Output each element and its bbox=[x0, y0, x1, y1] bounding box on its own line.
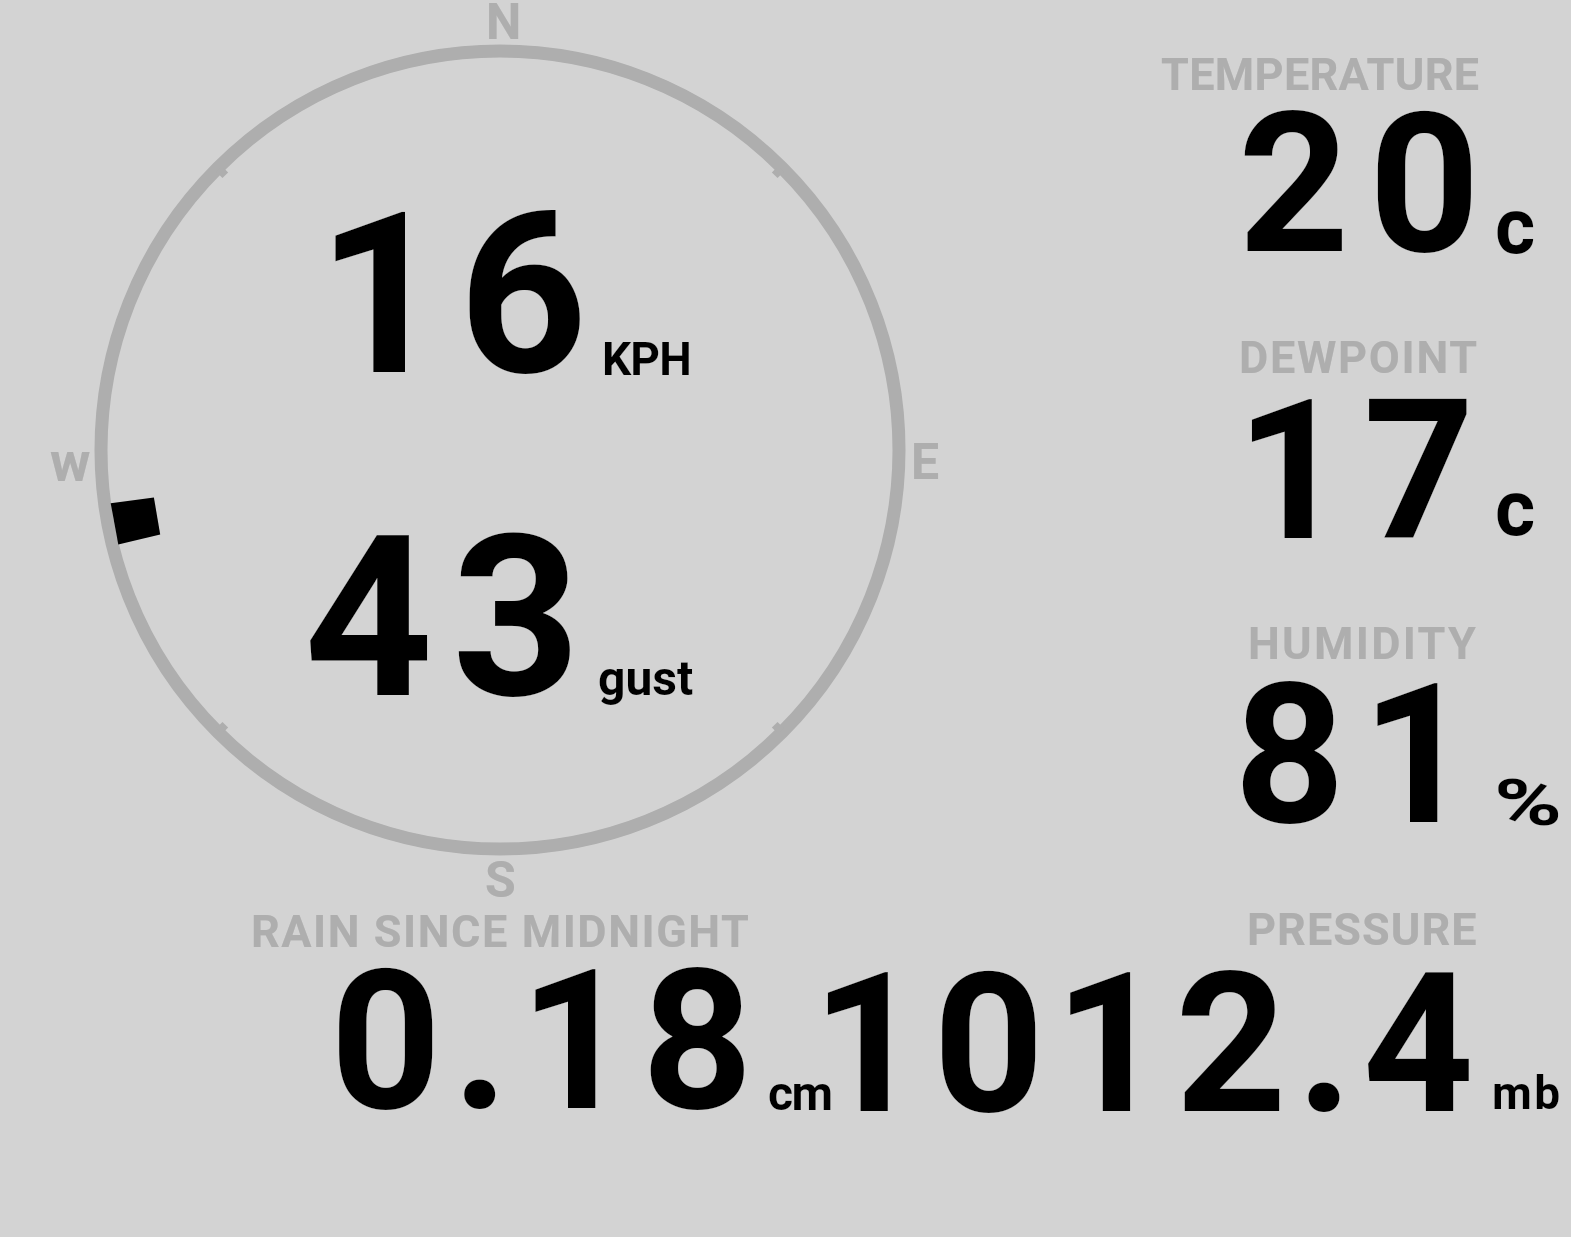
button[interactable]: Dew point 17 degrees Celsius bbox=[1150, 320, 1571, 570]
staticText: TEMPERATURE bbox=[1161, 48, 1480, 101]
staticText: KPH bbox=[602, 332, 691, 386]
staticText: c bbox=[1495, 464, 1536, 554]
staticText: 1012.4 bbox=[812, 931, 1484, 1158]
staticText: mb bbox=[1492, 1066, 1563, 1120]
staticText: 17 bbox=[1236, 358, 1491, 585]
button[interactable]: Wind 16 KPH gusting 43, from west south … bbox=[0, 0, 960, 900]
button[interactable]: Humidity 81 percent bbox=[1150, 600, 1571, 855]
staticText: E bbox=[911, 433, 940, 492]
staticText: w bbox=[50, 430, 91, 494]
staticText: 43 bbox=[304, 486, 600, 750]
staticText: 0.18 bbox=[330, 928, 764, 1155]
staticText: 16 bbox=[317, 163, 600, 427]
staticText: 81 bbox=[1234, 642, 1490, 869]
staticText: 20 bbox=[1238, 71, 1500, 298]
staticText: RAIN SINCE MIDNIGHT bbox=[251, 905, 751, 958]
staticText: c bbox=[1495, 182, 1536, 272]
button[interactable]: Rain since midnight 0.18 centimetres bbox=[220, 890, 860, 1135]
staticText: PRESSURE bbox=[1247, 903, 1478, 956]
staticText: gust bbox=[598, 650, 694, 706]
staticText: DEWPOINT bbox=[1239, 331, 1479, 384]
staticText: HUMIDITY bbox=[1248, 617, 1479, 670]
button[interactable]: Pressure 1012.4 millibars bbox=[860, 890, 1571, 1135]
staticText: cm bbox=[768, 1065, 832, 1121]
staticText: % bbox=[1494, 766, 1563, 841]
button[interactable]: Temperature 20 degrees Celsius bbox=[1150, 30, 1571, 295]
staticText: N bbox=[486, 0, 522, 52]
staticText: S bbox=[485, 851, 516, 910]
